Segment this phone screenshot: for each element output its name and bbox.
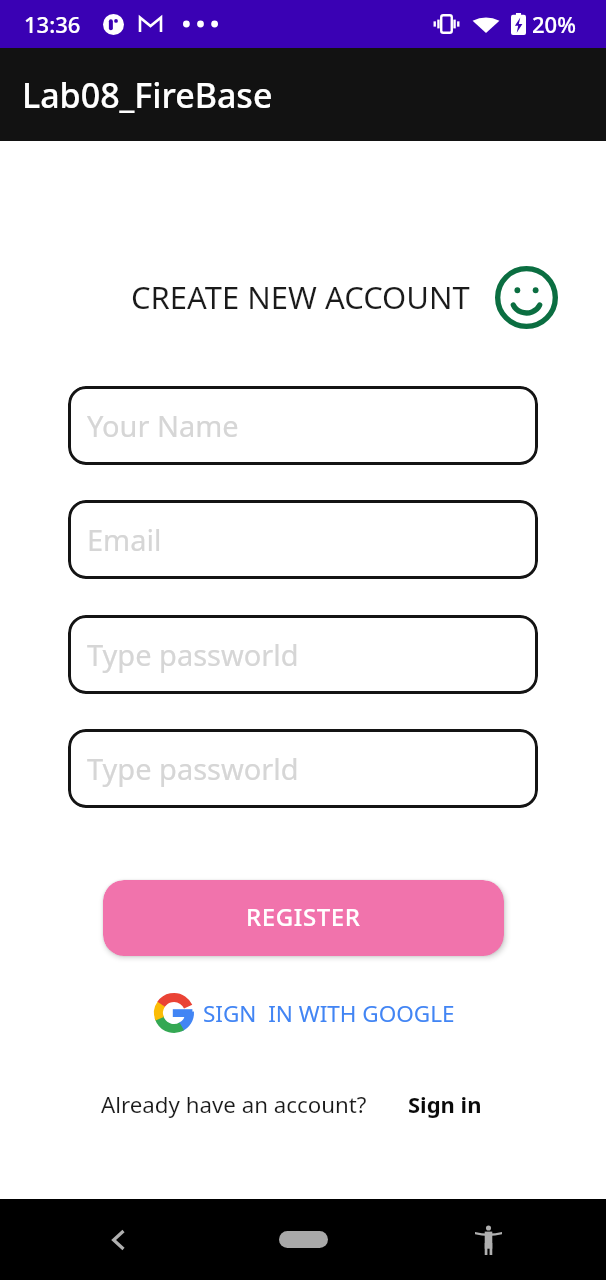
button[interactable]: Type passworld [68,729,538,808]
staticText: Type passworld [87,749,299,788]
button[interactable]: Back [107,1225,129,1255]
staticText: 20% [532,9,576,39]
staticText: 13:36 [24,9,81,39]
button[interactable]: SIGN IN WITH GOOGLE [154,993,455,1033]
button[interactable]: Accessibility [475,1225,502,1255]
button[interactable]: Home [279,1231,328,1248]
staticText: Your Name [87,406,239,445]
staticText: CREATE NEW ACCOUNT [131,276,470,318]
button[interactable]: Your Name [68,386,538,465]
staticText: SIGN IN WITH GOOGLE [203,998,455,1029]
button[interactable]: REGISTER [103,880,504,956]
staticText: Already have an account? [101,1089,367,1119]
button[interactable]: Email [68,500,538,579]
staticText: Lab08_FireBase [22,72,273,118]
staticText: REGISTER [246,900,361,933]
button[interactable]: Sign in [408,1089,482,1119]
staticText: Type passworld [87,635,299,674]
staticText: Email [87,520,162,559]
button[interactable]: Type passworld [68,615,538,694]
staticText: Sign in [408,1089,482,1119]
